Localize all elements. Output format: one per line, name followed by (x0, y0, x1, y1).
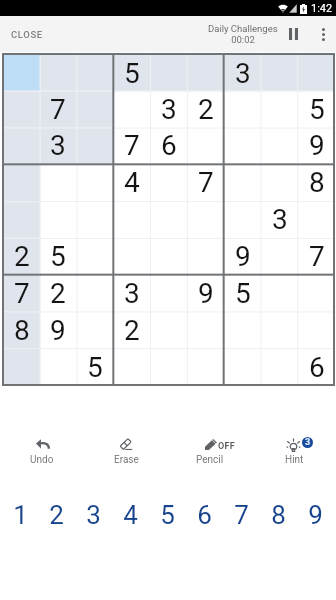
button[interactable] (149, 274, 186, 311)
button[interactable]: 8 (297, 163, 334, 200)
button[interactable]: 5 (39, 237, 75, 274)
button[interactable]: 7 (39, 90, 75, 126)
button[interactable] (149, 163, 186, 200)
button[interactable] (3, 163, 39, 200)
button[interactable]: 2 (112, 311, 149, 348)
button[interactable]: 5 (149, 499, 186, 531)
button[interactable] (186, 237, 223, 274)
button[interactable]: 3 (252, 430, 336, 476)
button[interactable] (297, 200, 334, 237)
button[interactable]: Undo (0, 430, 84, 476)
button[interactable] (112, 200, 149, 237)
button[interactable]: 9 (297, 126, 334, 163)
button[interactable]: 2 (3, 237, 39, 274)
button[interactable] (223, 126, 260, 163)
button[interactable] (297, 274, 334, 311)
button[interactable] (297, 311, 334, 348)
button[interactable] (223, 163, 260, 200)
button[interactable]: 9 (186, 274, 223, 311)
button[interactable]: OFF (168, 430, 252, 476)
button[interactable] (223, 200, 260, 237)
button[interactable]: 3 (223, 54, 260, 90)
button[interactable] (149, 348, 186, 385)
button[interactable] (3, 348, 39, 385)
button[interactable] (75, 54, 112, 90)
button[interactable]: 2 (186, 90, 223, 126)
button[interactable]: 5 (112, 54, 149, 90)
button[interactable]: 3 (149, 90, 186, 126)
button[interactable]: 7 (3, 274, 39, 311)
button[interactable]: 3 (112, 274, 149, 311)
button[interactable]: Pause (276, 16, 310, 52)
button[interactable] (186, 54, 223, 90)
button[interactable]: 8 (260, 499, 297, 531)
button[interactable]: 9 (297, 499, 334, 531)
button[interactable] (112, 348, 149, 385)
button[interactable] (39, 54, 75, 90)
button[interactable] (3, 200, 39, 237)
button[interactable] (149, 311, 186, 348)
button[interactable] (75, 274, 112, 311)
button[interactable] (186, 126, 223, 163)
button[interactable] (260, 348, 297, 385)
button[interactable]: 6 (297, 348, 334, 385)
button[interactable]: 9 (223, 237, 260, 274)
button[interactable] (260, 54, 297, 90)
button[interactable] (260, 274, 297, 311)
button[interactable] (149, 237, 186, 274)
button[interactable] (223, 90, 260, 126)
staticText: Erase (114, 454, 139, 466)
button[interactable] (75, 200, 112, 237)
button[interactable] (186, 200, 223, 237)
button[interactable]: 8 (3, 311, 39, 348)
button[interactable] (112, 90, 149, 126)
button[interactable]: Erase (84, 430, 168, 476)
button[interactable] (39, 200, 75, 237)
button[interactable] (223, 311, 260, 348)
button[interactable] (260, 90, 297, 126)
button[interactable]: 4 (112, 499, 149, 531)
button[interactable] (149, 200, 186, 237)
button[interactable]: 6 (149, 126, 186, 163)
button[interactable]: More options (310, 16, 336, 52)
button[interactable]: CLOSE (0, 16, 54, 52)
button[interactable] (3, 126, 39, 163)
button[interactable] (39, 348, 75, 385)
button[interactable] (3, 90, 39, 126)
button[interactable]: 5 (223, 274, 260, 311)
button[interactable]: 2 (38, 499, 75, 531)
button[interactable]: 6 (186, 499, 223, 531)
button[interactable]: 7 (297, 237, 334, 274)
button[interactable]: 5 (75, 348, 112, 385)
button[interactable]: 7 (112, 126, 149, 163)
button[interactable]: 7 (223, 499, 260, 531)
button[interactable]: 4 (112, 163, 149, 200)
button[interactable] (75, 163, 112, 200)
button[interactable]: 5 (297, 90, 334, 126)
button[interactable] (75, 237, 112, 274)
button[interactable]: 9 (39, 311, 75, 348)
button[interactable] (3, 54, 39, 90)
button[interactable]: 2 (39, 274, 75, 311)
button[interactable]: 3 (260, 200, 297, 237)
button[interactable] (39, 163, 75, 200)
staticText: Hint (285, 454, 304, 466)
button[interactable]: 7 (186, 163, 223, 200)
button[interactable] (186, 311, 223, 348)
button[interactable] (149, 54, 186, 90)
button[interactable] (223, 348, 260, 385)
button[interactable] (186, 348, 223, 385)
button[interactable] (297, 54, 334, 90)
button[interactable]: 3 (39, 126, 75, 163)
staticText: 7 (124, 129, 140, 162)
button[interactable] (260, 163, 297, 200)
button[interactable]: 1 (2, 499, 38, 531)
button[interactable] (112, 237, 149, 274)
button[interactable]: 3 (75, 499, 112, 531)
button[interactable] (260, 237, 297, 274)
